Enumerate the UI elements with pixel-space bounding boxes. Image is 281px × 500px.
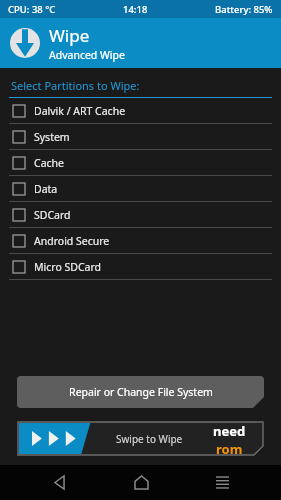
button[interactable]: Dalvik / ART Cache (9, 98, 272, 123)
button[interactable]: Back (37, 465, 81, 500)
staticText: Android Secure (34, 234, 110, 248)
staticText: Repair or Change File System (69, 385, 213, 399)
button[interactable]: Android Secure (9, 228, 272, 253)
button[interactable]: Data (9, 176, 272, 201)
staticText: System (34, 130, 70, 144)
button[interactable]: System (9, 124, 272, 149)
staticText: Cache (34, 156, 64, 170)
staticText: need (213, 422, 246, 440)
staticText: Advanced Wipe (49, 48, 125, 62)
staticText: rom (216, 440, 243, 455)
button[interactable]: Repair or Change File System (17, 376, 264, 408)
button[interactable]: Micro SDCard (9, 254, 272, 279)
staticText: 14:18 (123, 3, 148, 16)
other: Wipe (10, 28, 40, 58)
staticText: Battery: 85% (215, 3, 273, 16)
button[interactable]: Swipe to Wipe (18, 422, 263, 455)
button[interactable]: SDCard (9, 202, 272, 227)
staticText: Swipe to Wipe (116, 432, 183, 446)
button[interactable]: Menu (200, 465, 244, 500)
button[interactable]: Cache (9, 150, 272, 175)
button[interactable]: Home (119, 465, 163, 500)
staticText: SDCard (34, 208, 71, 222)
staticText: CPU: 38 °C (8, 3, 56, 16)
staticText: Dalvik / ART Cache (34, 104, 126, 118)
staticText: Micro SDCard (34, 260, 102, 274)
staticText: Data (34, 182, 58, 196)
button[interactable]: Wipe (0, 18, 281, 68)
staticText: Wipe (49, 24, 90, 47)
staticText: Select Partitions to Wipe: (11, 78, 140, 93)
